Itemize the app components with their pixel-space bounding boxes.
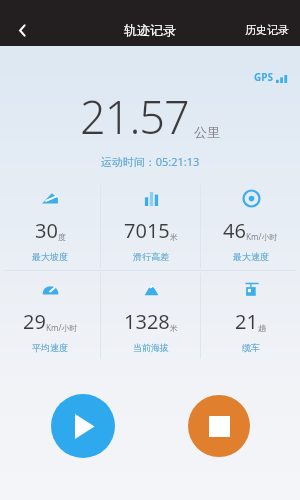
staticText: 46 — [223, 217, 246, 244]
staticText: 当前海拔 — [133, 342, 169, 353]
staticText: 滑行高差 — [133, 251, 169, 262]
button[interactable]: 1328 — [101, 271, 200, 361]
button[interactable]: Start recording — [51, 394, 115, 458]
staticText: 平均速度 — [32, 342, 68, 353]
staticText: 29 — [23, 308, 46, 335]
button[interactable]: Back — [0, 14, 44, 46]
button[interactable]: 30 — [0, 181, 100, 270]
staticText: Km/小时 — [46, 322, 78, 333]
button[interactable]: 46 — [201, 181, 300, 270]
staticText: 运动时间：05:21:13 — [0, 154, 300, 169]
staticText: 公里 — [194, 124, 220, 140]
staticText: 历史记录 — [245, 23, 289, 37]
button[interactable]: 历史记录 — [234, 14, 300, 46]
button[interactable]: 21 — [201, 271, 300, 361]
staticText: 米 — [170, 323, 178, 333]
staticText: 度 — [58, 232, 66, 242]
staticText: 轨迹记录 — [124, 22, 176, 38]
staticText: Km/小时 — [246, 231, 278, 242]
staticText: 趟 — [258, 323, 266, 333]
staticText: 最大坡度 — [32, 251, 68, 262]
staticText: GPS — [254, 70, 273, 84]
button[interactable]: Stop recording — [188, 395, 250, 457]
staticText: 21 — [235, 308, 258, 335]
staticText: 最大速度 — [233, 251, 269, 262]
staticText: 1328 — [124, 308, 170, 335]
staticText: 30 — [35, 217, 58, 244]
staticText: 米 — [170, 232, 178, 242]
staticText: 21.57 — [80, 86, 189, 147]
button[interactable]: 7015 — [101, 181, 200, 270]
staticText: 缆车 — [242, 342, 260, 353]
button[interactable]: 29 — [0, 271, 100, 361]
staticText: 7015 — [124, 217, 170, 244]
